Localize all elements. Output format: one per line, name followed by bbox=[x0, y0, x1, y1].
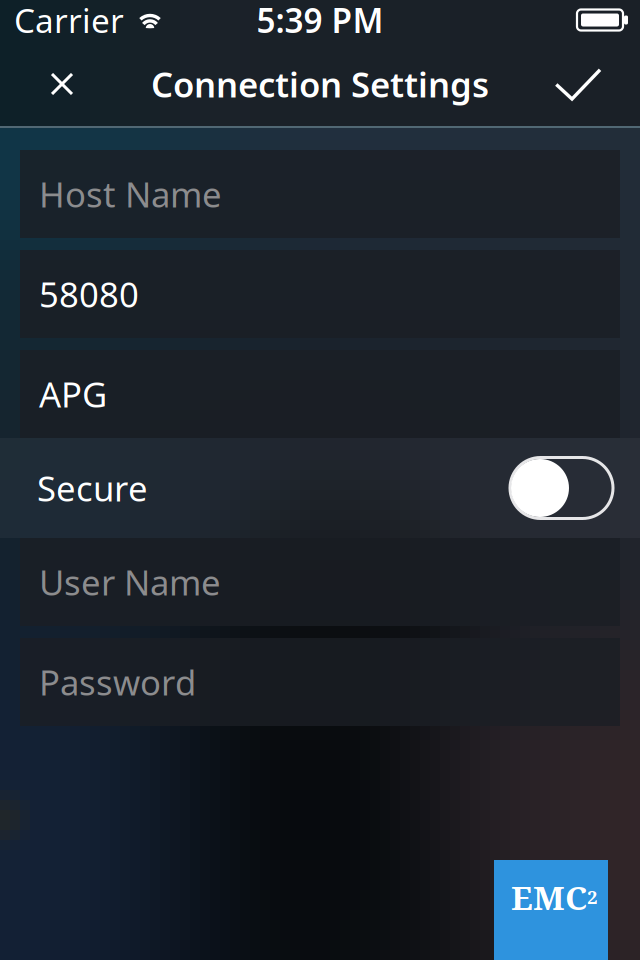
button[interactable]: User Name bbox=[20, 538, 620, 626]
staticText: 2 bbox=[587, 884, 598, 909]
staticText: User Name bbox=[39, 559, 221, 605]
staticText: Connection Settings bbox=[151, 61, 489, 107]
staticText: Host Name bbox=[39, 171, 222, 217]
button[interactable]: Close bbox=[0, 40, 124, 128]
staticText: EMC bbox=[511, 874, 587, 920]
button[interactable]: Password bbox=[20, 638, 620, 726]
button[interactable]: Save bbox=[516, 40, 640, 128]
staticText: 58080 bbox=[39, 271, 139, 317]
staticText: Carrier bbox=[14, 0, 124, 42]
staticText: Password bbox=[39, 659, 196, 705]
staticText: 5:39 PM bbox=[256, 0, 383, 42]
staticText: Secure bbox=[37, 465, 148, 511]
button[interactable]: 58080 bbox=[20, 250, 620, 338]
button[interactable]: APG bbox=[20, 350, 620, 438]
button[interactable]: Host Name bbox=[20, 150, 620, 238]
staticText: APG bbox=[39, 371, 107, 417]
button[interactable]: Secure bbox=[0, 438, 640, 538]
